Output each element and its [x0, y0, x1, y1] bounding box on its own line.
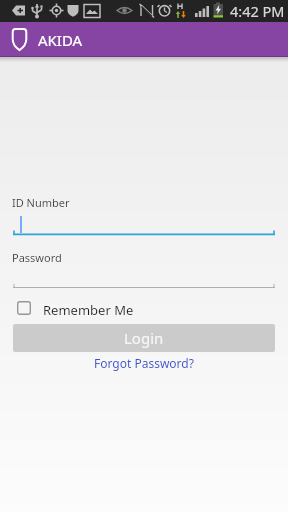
button[interactable]: [13, 208, 275, 236]
button[interactable]: [13, 262, 275, 289]
staticText: Password: [12, 250, 62, 265]
staticText: 4:42 PM: [230, 1, 285, 21]
staticText: Remember Me: [43, 301, 134, 319]
button[interactable]: Remember Me: [13, 297, 143, 319]
staticText: ID Number: [12, 195, 70, 210]
staticText: AKIDA: [38, 30, 83, 50]
button[interactable]: Login: [13, 324, 275, 352]
staticText: Login: [124, 328, 164, 348]
button[interactable]: Forgot Password?: [94, 355, 194, 371]
